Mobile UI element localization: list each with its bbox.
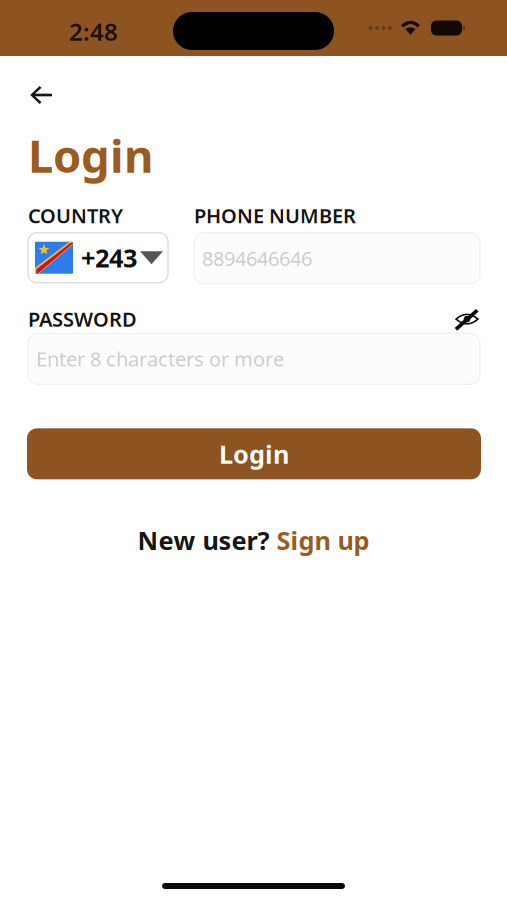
button[interactable]: New user? (0, 479, 507, 557)
button[interactable]: Country, +243 (28, 233, 168, 283)
button[interactable]: Show password (454, 308, 480, 329)
staticText: Enter 8 characters or more (36, 345, 284, 372)
button[interactable]: Back (0, 56, 66, 112)
staticText: COUNTRY (28, 202, 123, 229)
staticText: PHONE NUMBER (194, 202, 356, 229)
staticText: Login (219, 437, 289, 471)
staticText: PASSWORD (28, 306, 137, 332)
button[interactable]: Login (0, 384, 507, 479)
staticText: 2:48 (69, 16, 118, 47)
staticText: Login (28, 125, 153, 185)
staticText: New user? (137, 523, 276, 557)
staticText: Sign up (276, 523, 369, 557)
staticText: +243 (81, 241, 137, 274)
button[interactable]: Phone number (194, 233, 480, 284)
button[interactable]: Password (0, 332, 507, 384)
staticText: 8894646646 (202, 245, 312, 272)
